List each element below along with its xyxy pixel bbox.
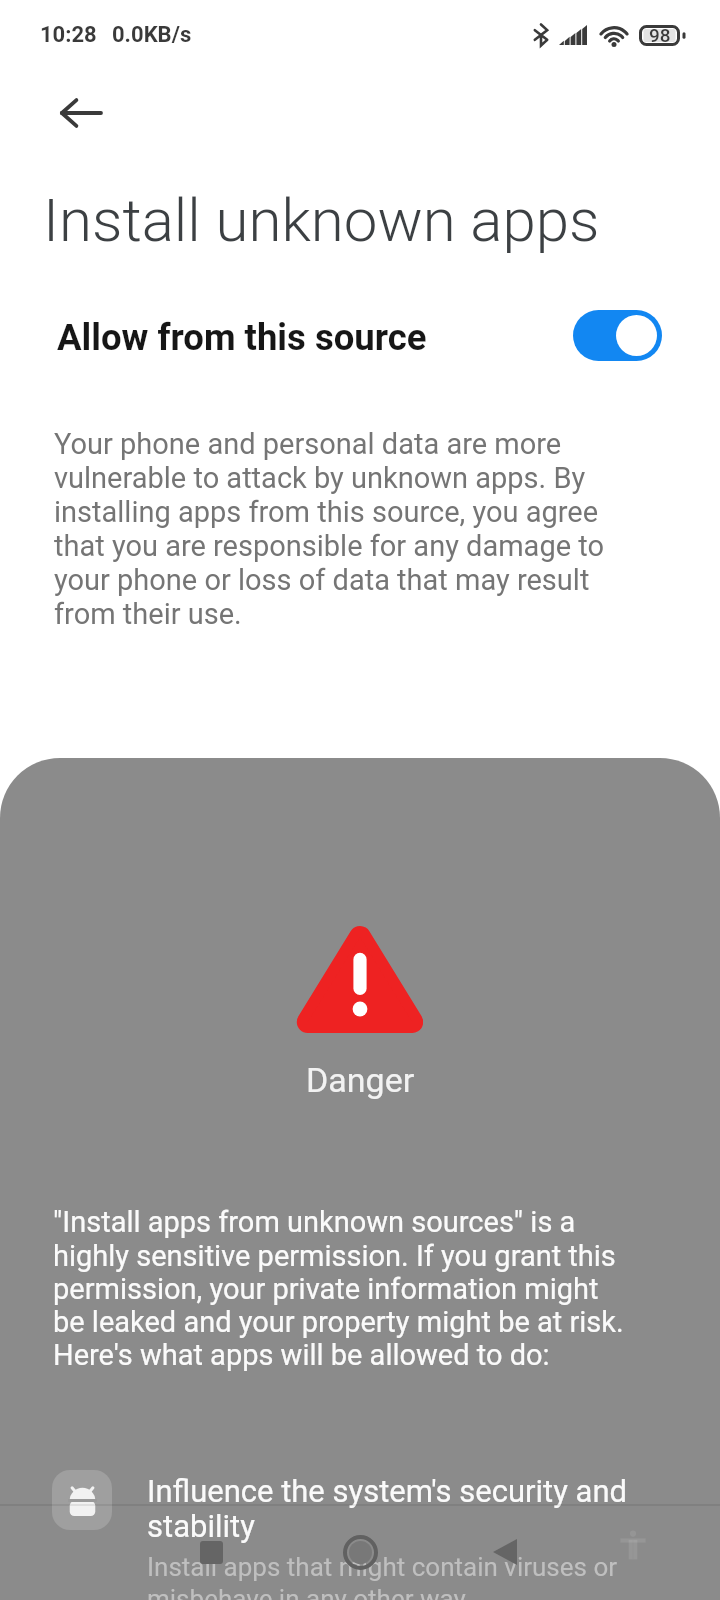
staticText: 0.0KB/s [112, 22, 192, 48]
button[interactable]: Influence the system's security and stab… [0, 1463, 720, 1600]
staticText: Danger [306, 1060, 415, 1100]
staticText: Install unknown apps [43, 185, 600, 255]
staticText: 10:28 [40, 22, 97, 48]
staticText: Influence the system's security and stab… [147, 1473, 714, 1544]
staticText: Install apps that might contain viruses … [147, 1552, 714, 1600]
button[interactable]: Allow from this source [0, 300, 720, 370]
staticText: "Install apps from unknown sources" is a… [53, 1205, 633, 1372]
button[interactable]: Back [471, 1518, 539, 1586]
button[interactable]: Back [42, 78, 118, 148]
button[interactable]: Accessibility [606, 1518, 660, 1572]
button[interactable]: Allow from this source [573, 310, 662, 361]
staticText: Allow from this source [57, 316, 427, 359]
button[interactable]: Recent apps [177, 1518, 245, 1586]
staticText: Your phone and personal data are more vu… [54, 427, 620, 631]
button[interactable]: Home [326, 1518, 394, 1586]
staticText: 98 [649, 24, 671, 46]
